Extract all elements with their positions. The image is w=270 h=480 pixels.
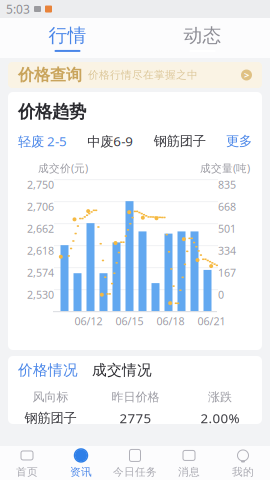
button[interactable]: 我的 [216,446,270,480]
staticText: 2,706 [27,200,54,214]
staticText: 成交量(吨) [200,161,250,175]
staticText: 价格趋势 [18,101,86,122]
staticText: 2,530 [27,288,54,302]
staticText: 06/12 [74,314,102,328]
staticText: 价格情况 [18,361,78,379]
staticText: 334 [218,244,236,258]
staticText: 轻废 2-5 [18,132,67,150]
staticText: > [244,69,249,81]
staticText: 成交价(元) [38,161,88,175]
staticText: 价格查询 [18,65,82,85]
staticText: 2,750 [27,178,54,192]
staticText: 更多 [226,133,252,149]
button[interactable]: 更多 [226,133,252,149]
staticText: 昨日价格 [111,390,159,404]
button[interactable]: 轻废 2-5 [18,132,67,150]
staticText: 资讯 [70,465,92,478]
staticText: 今日任务 [113,465,157,478]
button[interactable]: 中废6-9 [87,132,133,150]
staticText: 消息 [178,465,200,478]
staticText: 中废6-9 [87,132,133,150]
staticText: 2775 [119,409,151,427]
staticText: 钢筋团子 [154,133,206,149]
staticText: 06/21 [197,314,225,328]
staticText: 涨跌 [208,390,232,404]
staticText: 首页 [16,465,38,478]
button[interactable]: 钢筋团子 [154,133,206,149]
button[interactable]: 首页 [0,446,54,480]
button[interactable]: 成交情况 [92,361,152,379]
staticText: 行情 [48,24,86,47]
staticText: 06/18 [156,314,184,328]
button[interactable]: 资讯 [54,446,108,480]
staticText: 0 [218,288,224,302]
staticText: 价格行情尽在掌握之中 [88,68,198,81]
staticText: 钢筋团子 [24,410,76,426]
staticText: 成交情况 [92,361,152,379]
button[interactable]: 消息 [162,446,216,480]
staticText: 167 [218,266,236,280]
staticText: 835 [218,178,236,192]
staticText: 501 [218,222,236,236]
button[interactable]: 行情 [0,18,135,58]
staticText: 06/15 [115,314,143,328]
staticText: 我的 [232,465,254,478]
button[interactable]: 动态 [135,18,270,58]
button[interactable]: 价格情况 [18,361,78,379]
staticText: 5:03 [6,1,30,17]
staticText: 668 [218,200,236,214]
button[interactable]: 今日任务 [108,446,162,480]
button[interactable]: 价格查询 [8,62,262,88]
staticText: 2.00% [200,409,239,427]
staticText: 动态 [183,24,221,47]
staticText: 风向标 [32,390,68,404]
staticText: 2,574 [27,266,54,280]
staticText: 2,662 [27,222,54,236]
staticText: 2,618 [27,244,54,258]
